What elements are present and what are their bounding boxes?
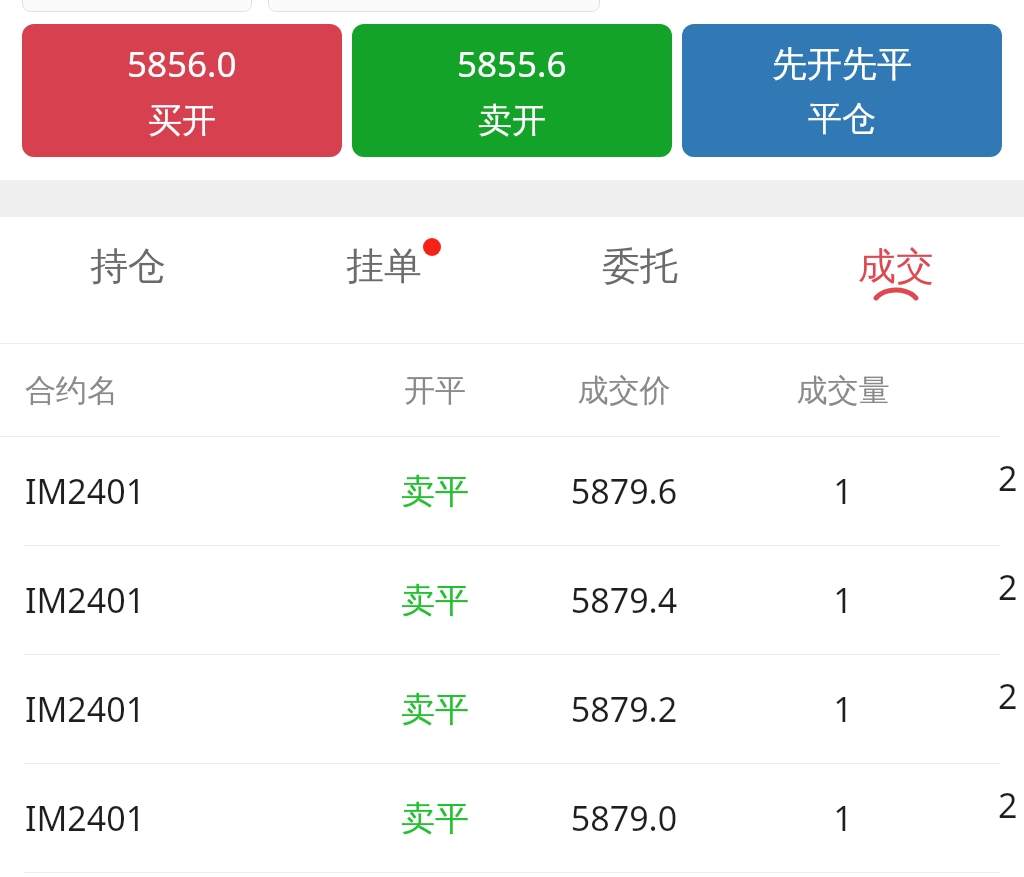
staticText: IM2401: [25, 468, 353, 514]
button[interactable]: IM2401: [0, 437, 1024, 545]
button[interactable]: IM2401: [0, 655, 1024, 763]
button[interactable]: 成交: [768, 217, 1024, 343]
staticText: 挂单: [346, 242, 422, 290]
button[interactable]: 5856.0: [22, 24, 342, 157]
staticText: 卖平: [353, 579, 517, 622]
staticText: 成交: [858, 242, 934, 290]
button[interactable]: 挂单: [256, 217, 512, 343]
staticText: 成交价: [517, 371, 731, 410]
staticText: 2: [998, 782, 1018, 828]
button[interactable]: IM2401: [0, 764, 1024, 872]
staticText: IM2401: [25, 577, 353, 623]
button[interactable]: 委托: [512, 217, 768, 343]
staticText: 2: [998, 455, 1018, 501]
staticText: 5879.0: [517, 795, 731, 841]
staticText: 卖平: [353, 797, 517, 840]
staticText: 成交量: [731, 371, 955, 410]
staticText: 合约名: [25, 371, 353, 410]
staticText: 卖平: [353, 470, 517, 513]
staticText: 5879.6: [517, 468, 731, 514]
button[interactable]: IM2401: [0, 546, 1024, 654]
staticText: 5879.2: [517, 686, 731, 732]
staticText: 1: [731, 686, 955, 732]
staticText: 2: [998, 673, 1018, 719]
staticText: 5879.4: [517, 577, 731, 623]
staticText: 1: [731, 577, 955, 623]
staticText: IM2401: [25, 686, 353, 732]
staticText: 卖平: [353, 688, 517, 731]
staticText: 2: [998, 564, 1018, 610]
staticText: IM2401: [25, 795, 353, 841]
button[interactable]: 先开先平: [682, 24, 1002, 157]
staticText: 先开先平: [772, 42, 912, 86]
staticText: 持仓: [90, 242, 166, 290]
staticText: 1: [731, 468, 955, 514]
button[interactable]: 持仓: [0, 217, 256, 343]
button[interactable]: Contract selector: [22, 0, 252, 12]
staticText: 委托: [602, 242, 678, 290]
button[interactable]: 5855.6: [352, 24, 672, 157]
staticText: 买开: [148, 99, 216, 142]
button[interactable]: Order type selector: [268, 0, 600, 12]
staticText: 卖开: [478, 99, 546, 142]
staticText: 5856.0: [127, 40, 237, 88]
staticText: 5855.6: [457, 40, 567, 88]
staticText: 开平: [353, 371, 517, 410]
staticText: 1: [731, 795, 955, 841]
staticText: 平仓: [808, 97, 876, 140]
